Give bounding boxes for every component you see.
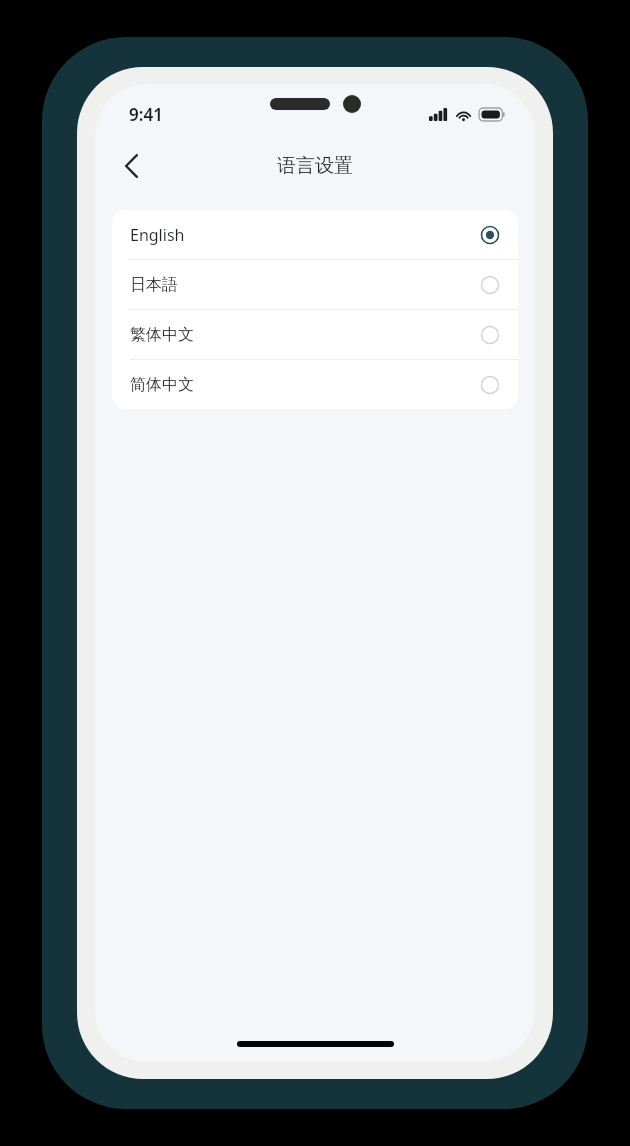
staticText: 9:41 (129, 103, 163, 126)
button[interactable]: English (112, 210, 518, 259)
staticText: 简体中文 (130, 375, 194, 395)
button[interactable]: 简体中文 (112, 360, 518, 409)
button[interactable]: 日本語 (112, 260, 518, 309)
button[interactable]: 繁体中文 (112, 310, 518, 359)
staticText: 日本語 (130, 275, 178, 295)
staticText: English (130, 224, 185, 246)
staticText: 繁体中文 (130, 325, 194, 345)
staticText: 语言设置 (277, 154, 353, 178)
button[interactable]: Back (109, 144, 153, 188)
